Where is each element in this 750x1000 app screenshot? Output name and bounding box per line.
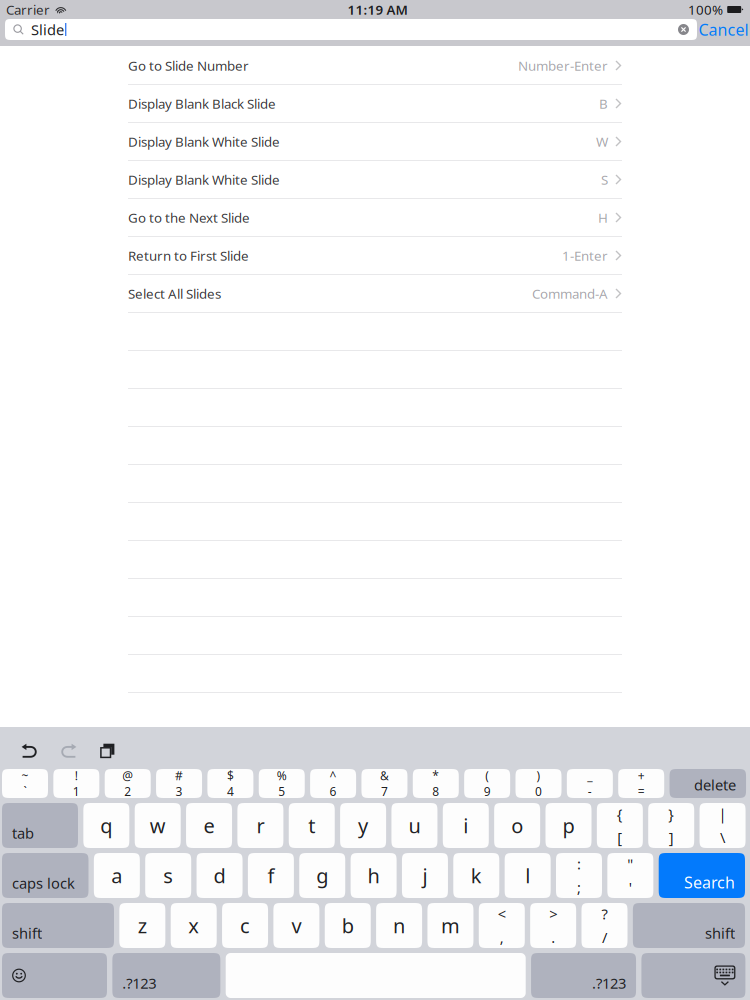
button[interactable]: @ — [105, 769, 151, 798]
button[interactable]: c — [222, 903, 268, 948]
button[interactable]: g — [299, 853, 345, 898]
staticText: b — [342, 912, 354, 939]
button[interactable]: x — [171, 903, 217, 948]
button[interactable]: d — [196, 853, 242, 898]
staticText: Slide — [31, 20, 64, 39]
staticText: & — [380, 768, 389, 783]
button[interactable]: ~ — [2, 769, 48, 798]
button[interactable]: : — [556, 853, 602, 898]
staticText: / — [602, 927, 607, 947]
staticText: g — [316, 862, 328, 889]
button[interactable]: { — [597, 803, 643, 848]
staticText: tab — [12, 823, 34, 843]
button[interactable]: < — [479, 903, 525, 948]
button[interactable]: caps lock — [2, 853, 88, 898]
button[interactable]: m — [427, 903, 473, 948]
button[interactable]: y — [340, 803, 386, 848]
staticText: w — [150, 812, 166, 839]
staticText: < — [498, 904, 506, 923]
staticText: Cancel — [698, 19, 748, 40]
staticText: 0 — [535, 783, 542, 799]
button[interactable]: Cancel — [697, 19, 750, 40]
button[interactable]: .?123 — [112, 953, 220, 998]
button[interactable]: o — [494, 803, 540, 848]
staticText: m — [441, 912, 460, 939]
button[interactable]: & — [361, 769, 407, 798]
button[interactable]: Undo — [10, 727, 49, 769]
button[interactable]: # — [156, 769, 202, 798]
staticText: = — [638, 783, 645, 799]
staticText: x — [188, 912, 199, 939]
staticText: n — [393, 912, 405, 939]
button[interactable]: > — [530, 903, 576, 948]
button[interactable]: v — [273, 903, 319, 948]
staticText: a — [111, 862, 122, 889]
button[interactable]: .?123 — [531, 953, 636, 998]
button[interactable]: e — [186, 803, 232, 848]
button[interactable]: % — [259, 769, 305, 798]
button[interactable]: Select All Slides — [128, 275, 622, 313]
button[interactable]: Redo — [49, 727, 88, 769]
staticText: 9 — [484, 783, 491, 799]
button[interactable]: i — [443, 803, 489, 848]
button[interactable]: shift — [633, 903, 745, 948]
button[interactable]: z — [119, 903, 165, 948]
staticText: _ — [587, 768, 592, 783]
button[interactable]: p — [545, 803, 591, 848]
button[interactable]: _ — [567, 769, 613, 798]
button[interactable]: ? — [581, 903, 627, 948]
button[interactable]: ^ — [310, 769, 356, 798]
button[interactable]: Paste — [88, 727, 127, 769]
staticText: v — [291, 912, 301, 939]
button[interactable]: w — [135, 803, 181, 848]
button[interactable]: f — [248, 853, 294, 898]
button[interactable]: Search — [659, 853, 745, 898]
button[interactable]: shift — [2, 903, 114, 948]
button[interactable]: Go to Slide Number — [128, 47, 622, 85]
button[interactable]: Display Blank White Slide — [128, 161, 622, 199]
button[interactable]: u — [391, 803, 437, 848]
button[interactable]: k — [453, 853, 499, 898]
staticText: ? — [601, 904, 607, 923]
staticText: Display Blank White Slide — [128, 171, 280, 188]
staticText: Go to the Next Slide — [128, 209, 250, 226]
button[interactable]: $ — [207, 769, 253, 798]
button[interactable]: | — [700, 803, 746, 848]
staticText: j — [422, 862, 427, 889]
button[interactable]: Display Blank Black Slide — [128, 85, 622, 123]
button[interactable]: q — [83, 803, 129, 848]
button[interactable]: Emoji — [2, 953, 107, 998]
staticText: @ — [122, 768, 133, 783]
button[interactable]: ) — [515, 769, 561, 798]
staticText: Display Blank White Slide — [128, 133, 280, 150]
staticText: z — [138, 912, 147, 939]
staticText: 6 — [330, 783, 337, 799]
button[interactable]: * — [413, 769, 459, 798]
button[interactable]: s — [145, 853, 191, 898]
button[interactable]: j — [402, 853, 448, 898]
button[interactable]: l — [505, 853, 551, 898]
staticText: u — [408, 812, 420, 839]
staticText: p — [562, 812, 574, 839]
button[interactable]: + — [618, 769, 664, 798]
button[interactable]: Return to First Slide — [128, 237, 622, 275]
button[interactable]: a — [94, 853, 140, 898]
button[interactable]: Display Blank White Slide — [128, 123, 622, 161]
button[interactable]: Go to the Next Slide — [128, 199, 622, 237]
button[interactable]: ! — [53, 769, 99, 798]
button[interactable]: t — [289, 803, 335, 848]
staticText: 100% — [688, 1, 723, 18]
button[interactable]: tab — [2, 803, 78, 848]
button[interactable]: b — [325, 903, 371, 948]
button[interactable]: } — [648, 803, 694, 848]
button[interactable]: ( — [464, 769, 510, 798]
button[interactable]: " — [607, 853, 653, 898]
button[interactable]: r — [237, 803, 283, 848]
button[interactable]: Dismiss keyboard — [641, 953, 745, 998]
button[interactable]: delete — [670, 769, 746, 798]
staticText: t — [308, 812, 315, 839]
button[interactable]: h — [351, 853, 397, 898]
staticText: ' — [629, 877, 632, 897]
button[interactable]: n — [376, 903, 422, 948]
